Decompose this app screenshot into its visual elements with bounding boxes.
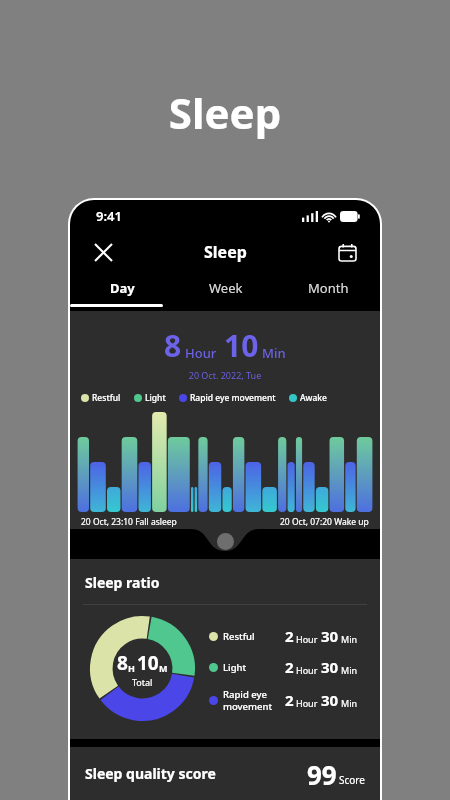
staticText: Week (209, 279, 243, 297)
button[interactable]: Close (86, 235, 120, 269)
staticText: Month (308, 279, 349, 297)
staticText: 2 (285, 626, 294, 646)
staticText: Restful (223, 630, 285, 643)
staticText: Light (145, 392, 166, 404)
staticText: Hour (296, 697, 318, 709)
staticText: Light (223, 661, 285, 674)
button[interactable]: Week (174, 272, 277, 304)
button[interactable]: Day (70, 272, 174, 304)
staticText: Sleep (204, 241, 247, 263)
staticText: Min (341, 633, 358, 645)
staticText: Rapid eye movement (190, 392, 276, 404)
staticText: Hour (296, 664, 318, 676)
staticText: Rapid eye movement (223, 688, 285, 712)
staticText: 10 (137, 650, 159, 676)
staticText: 10 (224, 325, 259, 366)
staticText: Min (262, 344, 286, 362)
staticText: Total (132, 676, 153, 688)
staticText: Awake (300, 392, 327, 404)
staticText: 8 (117, 650, 128, 676)
staticText: H (128, 662, 135, 674)
staticText: 9:41 (96, 207, 122, 225)
staticText: 20 Oct. 2022, Tue (70, 369, 380, 381)
staticText: Day (110, 279, 135, 297)
staticText: Score (339, 773, 365, 787)
staticText: 2 (285, 690, 294, 710)
staticText: 99 (307, 757, 337, 790)
staticText: 30 (321, 690, 339, 710)
staticText: Restful (92, 392, 121, 404)
staticText: Min (341, 664, 358, 676)
staticText: 8 (164, 325, 182, 366)
staticText: 20 Oct, 23:10 Fall asleep (81, 516, 177, 528)
staticText: Sleep quality score (85, 764, 216, 783)
staticText: 30 (321, 657, 339, 677)
button[interactable]: Drag handle (217, 533, 234, 550)
button[interactable]: Calendar (330, 235, 364, 269)
staticText: 20 Oct, 07:20 Wake up (280, 516, 369, 528)
staticText: Hour (185, 344, 217, 362)
staticText: Min (341, 697, 358, 709)
staticText: M (159, 662, 168, 674)
staticText: Hour (296, 633, 318, 645)
staticText: Sleep ratio (85, 573, 160, 592)
staticText: Sleep (0, 84, 450, 141)
staticText: 2 (285, 657, 294, 677)
button[interactable]: Month (277, 272, 380, 304)
staticText: 30 (321, 626, 339, 646)
